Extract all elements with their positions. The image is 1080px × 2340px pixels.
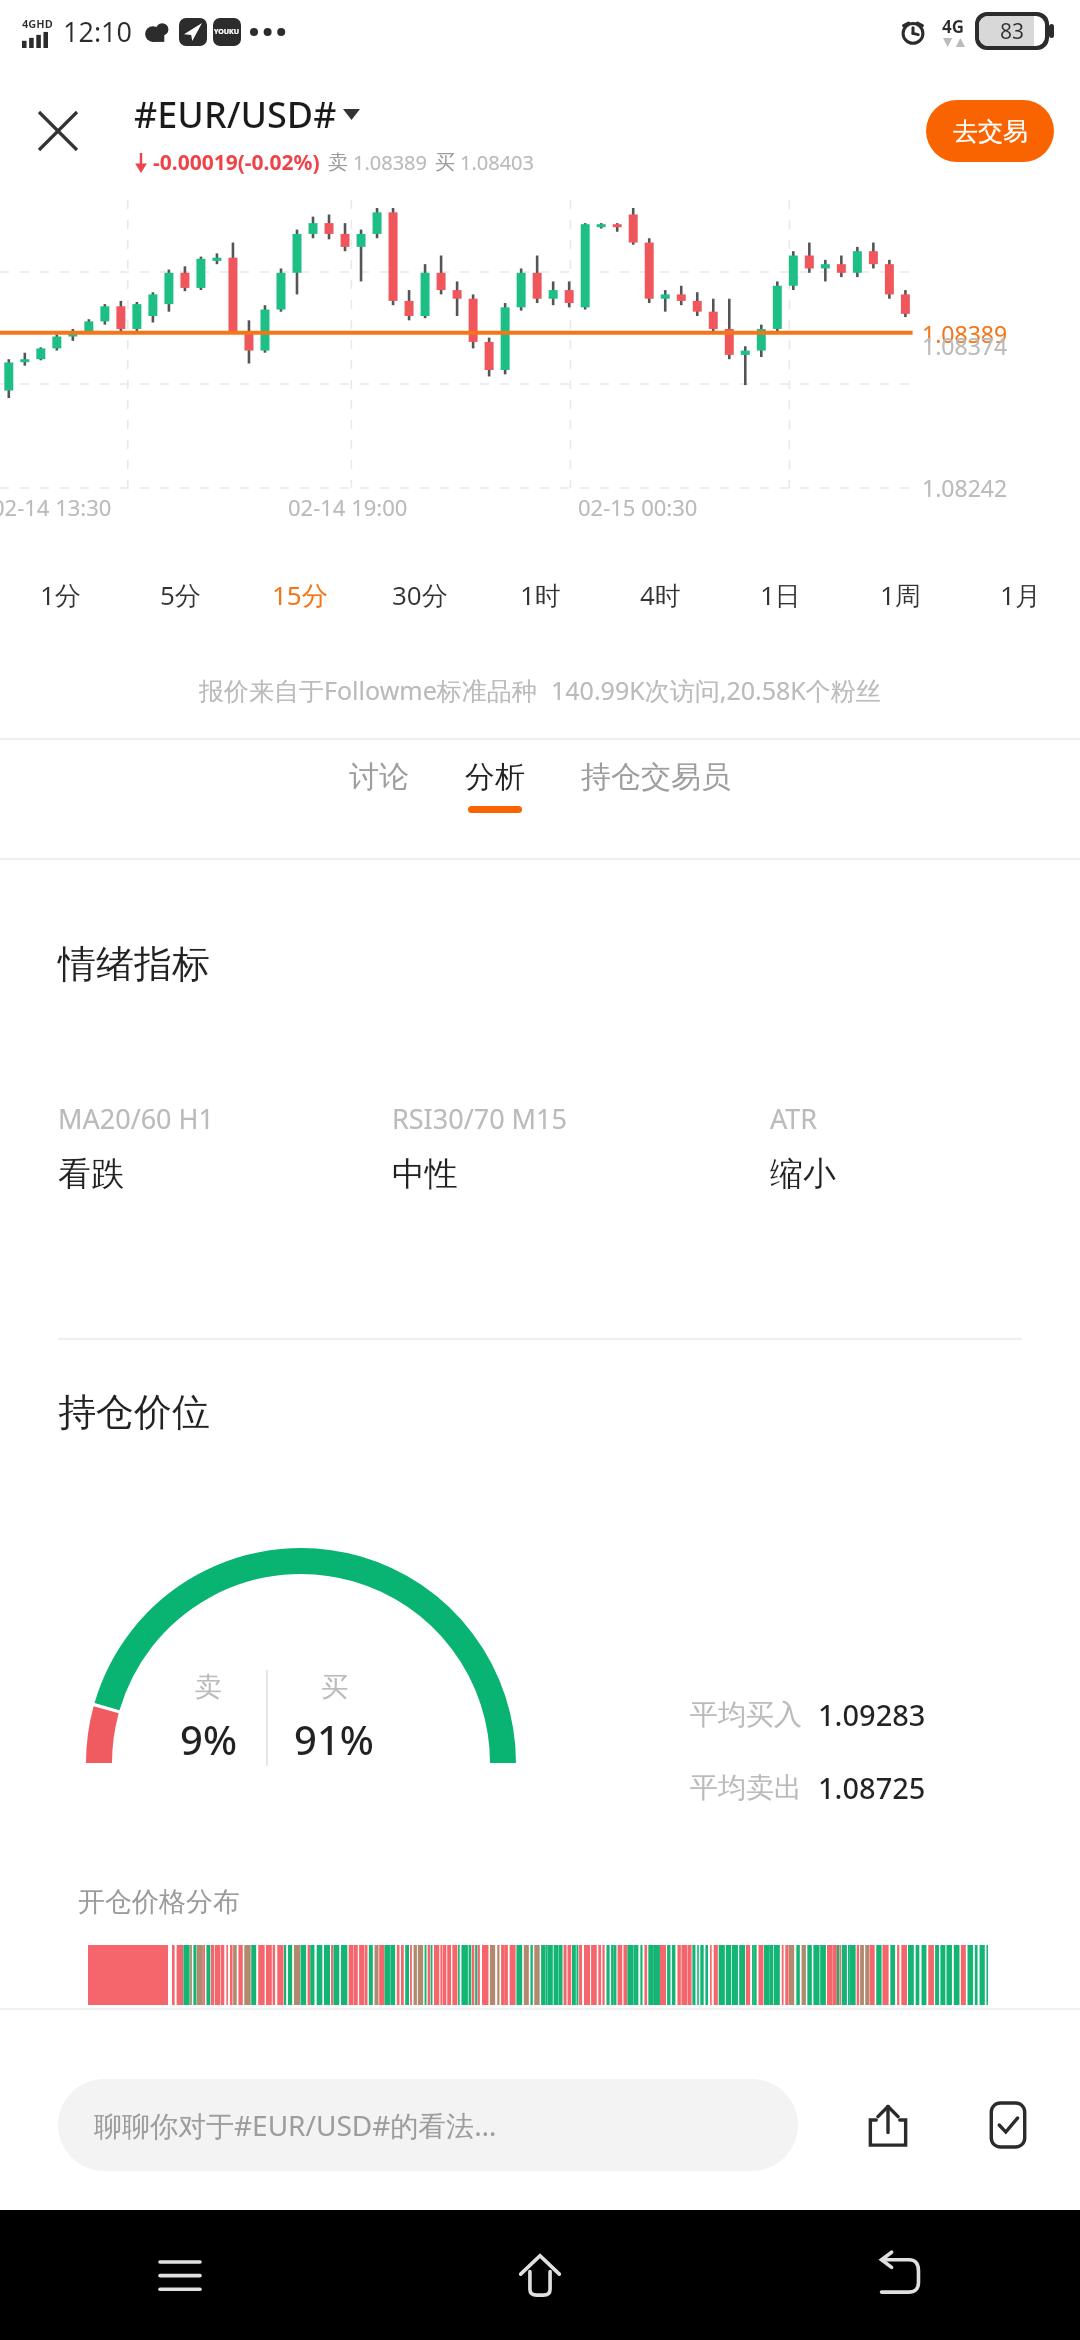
button[interactable]: 分析 <box>455 758 535 813</box>
staticText: #EUR/USD# <box>134 90 337 139</box>
staticText: 02-15 00:30 <box>578 492 698 522</box>
staticText: 12:10 <box>63 13 133 50</box>
staticText: 30分 <box>392 577 448 613</box>
button[interactable]: 30分 <box>360 558 480 632</box>
staticText: 报价来自于Followme标准品种 <box>199 673 537 707</box>
staticText: 4时 <box>640 577 681 613</box>
staticText: 15分 <box>272 577 328 613</box>
staticText: 平均卖出 <box>690 1770 802 1805</box>
button[interactable]: 1月 <box>960 558 1080 632</box>
staticText: -0.00019(-0.02%) <box>153 148 320 177</box>
button[interactable]: Home <box>360 2210 720 2340</box>
staticText: 1.09283 <box>818 1695 926 1734</box>
staticText: 1.08403 <box>460 149 534 176</box>
staticText: 5分 <box>160 577 201 613</box>
staticText: 中性 <box>392 1153 458 1195</box>
staticText: 聊聊你对于#EUR/USD#的看法… <box>94 2106 497 2144</box>
button[interactable]: Close <box>20 93 96 169</box>
button[interactable]: 讨论 <box>339 758 419 806</box>
staticText: 讨论 <box>349 758 409 796</box>
staticText: 卖 <box>328 150 348 175</box>
button[interactable]: 4时 <box>600 558 720 632</box>
button[interactable]: 去交易 <box>926 100 1054 162</box>
staticText: 分析 <box>465 758 525 796</box>
staticText: 1分 <box>40 577 81 613</box>
staticText: 4GHD <box>22 16 53 31</box>
staticText: 4G <box>942 15 965 38</box>
staticText: 140.99K次访问,20.58K个粉丝 <box>551 673 881 707</box>
staticText: 看跌 <box>58 1153 124 1195</box>
staticText: 02-14 19:00 <box>288 492 408 522</box>
staticText: 02-14 13:30 <box>0 492 112 522</box>
button[interactable]: 5分 <box>120 558 240 632</box>
button[interactable]: Select <box>968 2085 1048 2165</box>
staticText: 平均买入 <box>690 1697 802 1732</box>
staticText: 1.08242 <box>922 472 1008 503</box>
button[interactable]: Share <box>848 2085 928 2165</box>
staticText: 持仓价位 <box>58 1388 210 1436</box>
staticText: MA20/60 H1 <box>58 1100 215 1137</box>
staticText: 买 <box>435 150 455 175</box>
button[interactable]: 15分 <box>240 558 360 632</box>
staticText: 1月 <box>1000 577 1041 613</box>
staticText: 开仓价格分布 <box>78 1885 240 1919</box>
staticText: 持仓交易员 <box>581 758 731 796</box>
staticText: 83 <box>1000 17 1025 46</box>
staticText: 9% <box>180 1712 237 1766</box>
button[interactable]: #EUR/USD# <box>134 90 360 139</box>
staticText: RSI30/70 M15 <box>392 1100 567 1137</box>
staticText: 1.08725 <box>818 1768 926 1807</box>
staticText: 情绪指标 <box>58 940 210 988</box>
button[interactable]: Back <box>720 2210 1080 2340</box>
staticText: 1.08374 <box>922 330 1008 361</box>
staticText: 1.08389 <box>353 149 427 176</box>
button[interactable]: 1时 <box>480 558 600 632</box>
staticText: 91% <box>294 1712 374 1766</box>
staticText: 1时 <box>520 577 561 613</box>
staticText: 买 <box>321 1670 348 1704</box>
button[interactable]: 1周 <box>840 558 960 632</box>
button[interactable]: 聊聊你对于#EUR/USD#的看法… <box>58 2079 798 2171</box>
staticText: 卖 <box>195 1670 222 1704</box>
button[interactable]: Recents <box>0 2210 360 2340</box>
button[interactable]: 1日 <box>720 558 840 632</box>
button[interactable]: 持仓交易员 <box>571 758 741 806</box>
staticText: ATR <box>770 1100 818 1137</box>
staticText: 1日 <box>760 577 801 613</box>
button[interactable]: 1分 <box>0 558 120 632</box>
staticText: 1周 <box>880 577 921 613</box>
staticText: YOUKU <box>214 27 240 37</box>
staticText: 1.08389 <box>922 318 1008 349</box>
staticText: 缩小 <box>770 1153 836 1195</box>
staticText: 去交易 <box>953 116 1028 147</box>
